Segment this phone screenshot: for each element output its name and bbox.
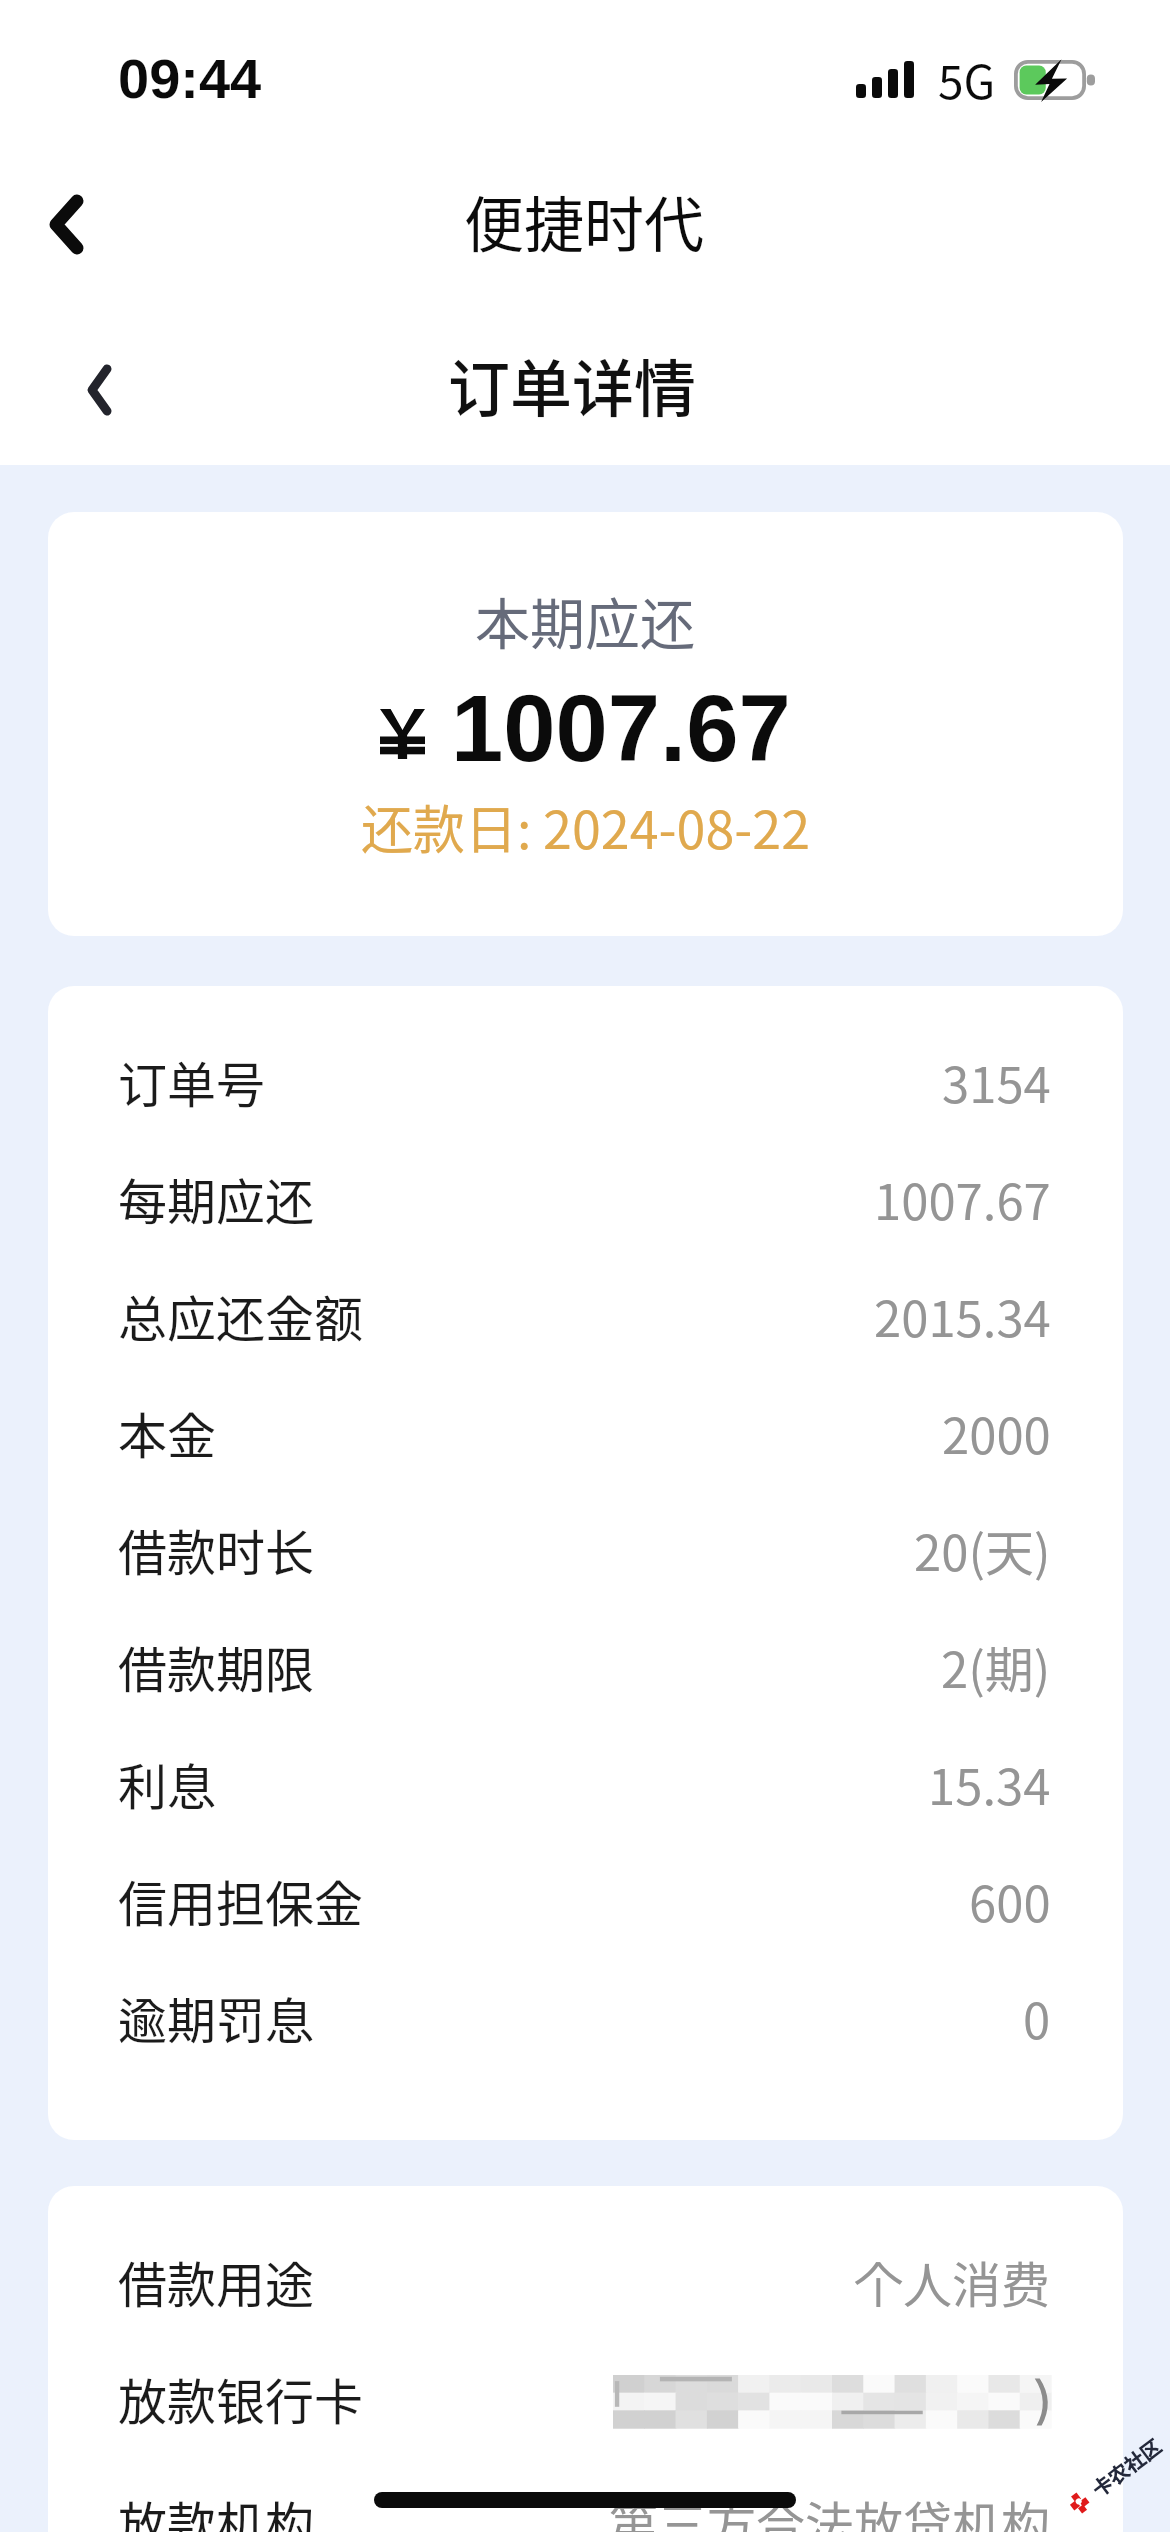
button[interactable]: 本期应还 — [48, 512, 1123, 936]
button[interactable]: 订单号 — [48, 1023, 1123, 1140]
button[interactable]: 借款用途 — [48, 2223, 1123, 2340]
button[interactable]: 总应还金额 — [48, 1257, 1123, 1374]
button[interactable]: 利息 — [48, 1725, 1123, 1842]
staticText: 借款用途 — [118, 2246, 315, 2317]
staticText: 0 — [1023, 1982, 1051, 2053]
staticText: 2000 — [942, 1397, 1051, 1468]
staticText: 第三方合法放贷机构 — [609, 2486, 1051, 2532]
staticText: 订单号 — [118, 1046, 266, 1117]
staticText: 本期应还 — [475, 580, 696, 660]
button[interactable]: Back — [18, 164, 114, 284]
staticText: 15.34 — [928, 1748, 1051, 1819]
button[interactable]: 逾期罚息 — [48, 1959, 1123, 2076]
staticText: 信用担保金 — [118, 1865, 364, 1936]
staticText: 本金 — [118, 1397, 217, 1468]
staticText: 放款银行卡 — [118, 2363, 364, 2434]
staticText: 1007.67 — [874, 1163, 1051, 1234]
button[interactable]: 放款银行卡 — [48, 2340, 1123, 2457]
button[interactable]: 放款机构 — [48, 2457, 1123, 2532]
staticText: 放款机构 — [118, 2486, 315, 2532]
staticText: 还款日: 2024-08-22 — [361, 789, 811, 864]
staticText: 09:44 — [118, 47, 262, 110]
staticText: 2(期) — [941, 1631, 1051, 1702]
staticText: 每期应还 — [118, 1163, 315, 1234]
button[interactable]: 借款时长 — [48, 1491, 1123, 1608]
staticText: 600 — [969, 1865, 1051, 1936]
staticText: 订单详情 — [448, 340, 697, 430]
staticText: 借款期限 — [118, 1631, 315, 1702]
button[interactable]: 本金 — [48, 1374, 1123, 1491]
button[interactable]: Back — [58, 340, 140, 440]
staticText: 借款时长 — [118, 1514, 315, 1585]
staticText: 20(天) — [914, 1514, 1051, 1585]
button[interactable]: 信用担保金 — [48, 1842, 1123, 1959]
staticText: 总应还金额 — [118, 1280, 364, 1351]
staticText: 2015.34 — [874, 1280, 1051, 1351]
staticText: 便捷时代 — [464, 177, 704, 264]
staticText: 逾期罚息 — [118, 1982, 315, 2053]
staticText: 个人消费 — [854, 2246, 1051, 2317]
staticText: 利息 — [118, 1748, 217, 1819]
button[interactable]: 每期应还 — [48, 1140, 1123, 1257]
staticText: 3154 — [942, 1046, 1051, 1117]
button[interactable]: 借款期限 — [48, 1608, 1123, 1725]
staticText: 卡农社区 — [1085, 2431, 1167, 2503]
staticText: 1007.67 — [451, 676, 791, 781]
staticText: 5G — [938, 46, 996, 113]
